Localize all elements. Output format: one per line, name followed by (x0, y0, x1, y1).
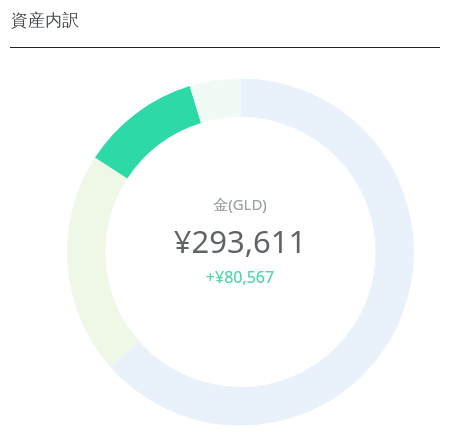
button[interactable]: 資産内訳 (0, 0, 450, 40)
staticText: 資産内訳 (11, 10, 79, 31)
staticText: ¥293,611 (140, 220, 340, 262)
button[interactable]: 金 GLD の保有額 293,611円 (140, 194, 340, 288)
staticText: 金(GLD) (140, 194, 340, 214)
staticText: +¥80,567 (140, 266, 340, 288)
